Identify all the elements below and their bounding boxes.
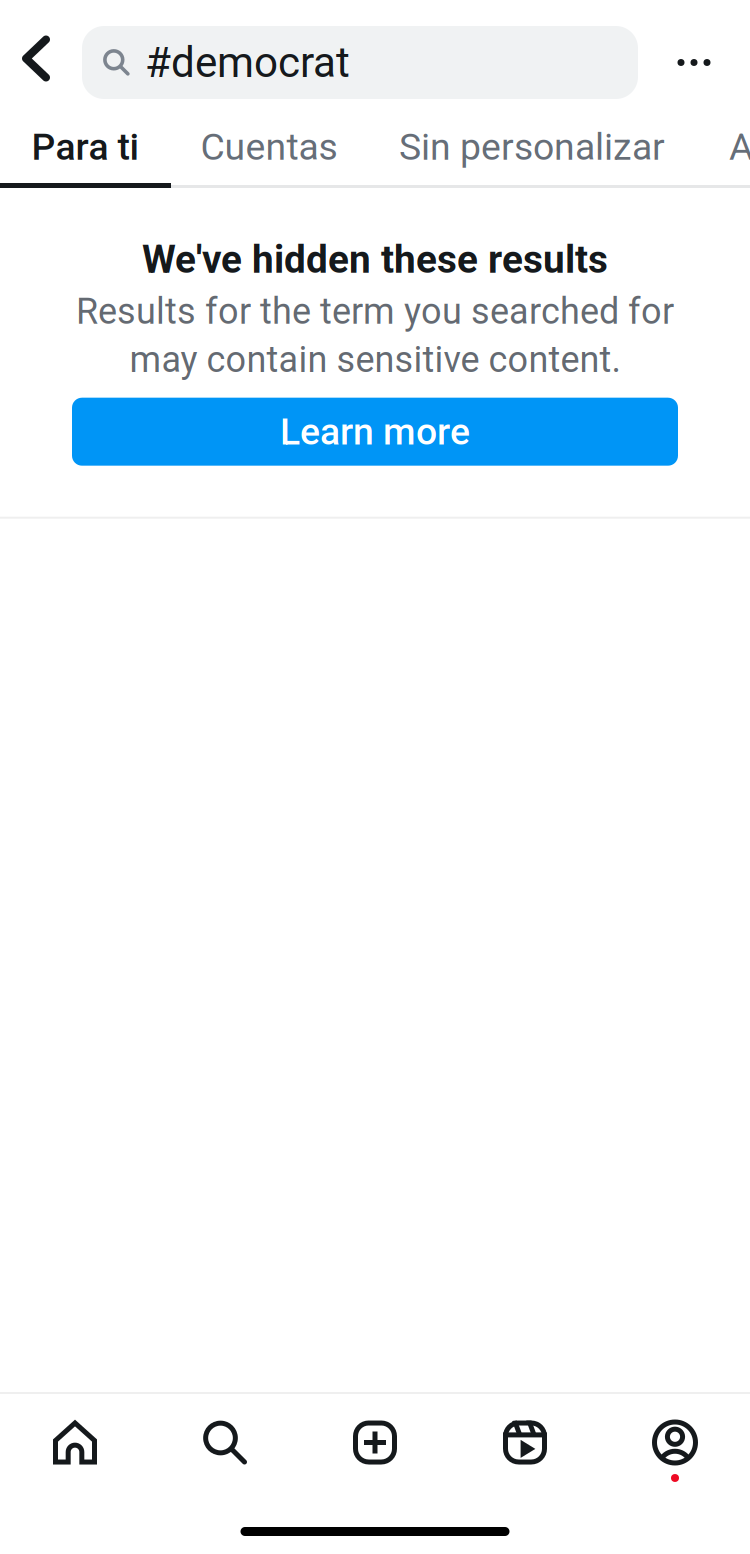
staticText: Para ti <box>31 125 139 169</box>
button[interactable]: Cuentas <box>171 125 367 188</box>
staticText: may contain sensitive content. <box>129 338 620 381</box>
staticText: Aud <box>729 125 750 169</box>
staticText: Cuentas <box>200 125 337 169</box>
staticText: Results for the term you searched for <box>76 290 674 332</box>
button[interactable]: Sin personalizar <box>367 125 697 188</box>
button[interactable]: Learn more <box>72 398 678 466</box>
button[interactable]: Home <box>0 1400 150 1484</box>
button[interactable]: Para ti <box>0 125 171 188</box>
staticText: We've hidden these results <box>142 237 608 282</box>
staticText: Learn more <box>280 410 470 453</box>
button[interactable]: Search <box>150 1400 300 1484</box>
button[interactable]: Back <box>0 0 82 125</box>
button[interactable]: Reels <box>450 1400 600 1484</box>
button[interactable]: Profile <box>600 1400 750 1484</box>
staticText: #democrat <box>145 38 350 87</box>
button[interactable]: Aud <box>697 125 750 188</box>
button[interactable]: Create <box>300 1400 450 1484</box>
staticText: Sin personalizar <box>399 125 665 169</box>
button[interactable]: More options <box>638 7 750 117</box>
